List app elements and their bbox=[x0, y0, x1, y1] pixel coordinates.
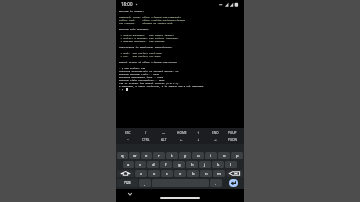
staticText: Working with packages: bbox=[119, 28, 150, 31]
button[interactable]: t bbox=[166, 152, 178, 159]
staticText: l bbox=[230, 162, 232, 168]
staticText: — bbox=[162, 131, 166, 135]
button[interactable]: a bbox=[123, 161, 134, 168]
button[interactable]: f bbox=[160, 161, 172, 168]
staticText: q bbox=[121, 153, 124, 159]
staticText: w bbox=[133, 153, 137, 159]
staticText: f bbox=[165, 162, 167, 168]
staticText: Building dependency tree... Done bbox=[119, 76, 164, 79]
staticText: vim is already the newest version (9.0.1… bbox=[119, 82, 180, 85]
staticText: e bbox=[145, 153, 148, 159]
button[interactable]: q bbox=[117, 152, 128, 159]
button[interactable]: s bbox=[135, 161, 146, 168]
button[interactable]: l bbox=[225, 161, 237, 168]
staticText: ~ $ bbox=[119, 88, 125, 91]
button[interactable]: ~ bbox=[119, 136, 137, 143]
staticText: * Search packages: pkg search <query> bbox=[119, 34, 175, 37]
button[interactable]: HOME bbox=[173, 129, 190, 136]
staticText: p bbox=[236, 153, 239, 159]
button[interactable]: k bbox=[212, 161, 224, 168]
staticText: Subscribing to additional repositories: bbox=[119, 46, 173, 49]
button[interactable]: w bbox=[129, 152, 140, 159]
button[interactable]: u bbox=[192, 152, 204, 159]
staticText: Gitter chat: https://gitter.im/termux/te… bbox=[119, 19, 186, 22]
button[interactable]: ↑ bbox=[190, 129, 207, 136]
button[interactable]: h bbox=[186, 161, 198, 168]
button[interactable]: b bbox=[187, 170, 199, 177]
button[interactable]: m bbox=[213, 170, 225, 177]
button[interactable]: j bbox=[199, 161, 211, 168]
button[interactable]: Backspace bbox=[226, 170, 243, 177]
staticText: x bbox=[153, 171, 156, 177]
staticText: m bbox=[217, 171, 221, 177]
button[interactable]: o bbox=[218, 152, 230, 159]
button[interactable]: p bbox=[231, 152, 243, 159]
staticText: 18:00 bbox=[121, 1, 133, 7]
staticText: / bbox=[145, 131, 147, 135]
button[interactable]: v bbox=[174, 170, 186, 177]
button[interactable]: ← bbox=[173, 136, 190, 143]
button[interactable]: PGDN bbox=[224, 136, 241, 143]
staticText: c bbox=[166, 171, 169, 177]
button[interactable]: END bbox=[207, 129, 224, 136]
staticText: PGDN bbox=[228, 138, 238, 142]
staticText: * Install a package: pkg install <packag… bbox=[119, 37, 179, 40]
staticText: * Root: pkg install root-repo bbox=[119, 52, 162, 55]
staticText: END bbox=[212, 131, 219, 135]
staticText: HOME bbox=[177, 131, 187, 135]
button[interactable]: ESC bbox=[119, 129, 137, 136]
button[interactable]: r bbox=[153, 152, 165, 159]
staticText: v bbox=[179, 171, 182, 177]
staticText: z bbox=[140, 171, 142, 177]
staticText: d bbox=[152, 162, 155, 168]
staticText: Community forum: https://termux.com/comm… bbox=[119, 16, 182, 19]
staticText: ?123 bbox=[124, 181, 131, 185]
button[interactable]: CTRL bbox=[137, 136, 155, 143]
button[interactable]: x bbox=[148, 170, 160, 177]
button[interactable]: Shift bbox=[117, 170, 134, 177]
button[interactable]: . bbox=[210, 179, 222, 187]
button[interactable]: Enter bbox=[223, 179, 243, 187]
staticText: . bbox=[215, 181, 217, 186]
staticText: ~ bbox=[127, 138, 129, 142]
button[interactable]: c bbox=[161, 170, 173, 177]
staticText: Reading package lists... Done bbox=[119, 73, 159, 76]
staticText: CTRL bbox=[142, 138, 150, 142]
button[interactable]: ALT bbox=[155, 136, 173, 143]
staticText: g bbox=[178, 162, 181, 168]
button[interactable]: PGUP bbox=[224, 129, 241, 136]
button[interactable]: z bbox=[135, 170, 147, 177]
staticText: r bbox=[158, 153, 160, 159]
staticText: * Upgrade packages: pkg upgrade bbox=[119, 40, 165, 43]
staticText: o bbox=[223, 153, 226, 159]
staticText: t bbox=[171, 153, 173, 159]
button[interactable]: g bbox=[173, 161, 185, 168]
button[interactable]: , bbox=[139, 179, 151, 187]
button[interactable]: e bbox=[141, 152, 152, 159]
button[interactable]: n bbox=[200, 170, 212, 177]
staticText: b bbox=[192, 171, 195, 177]
button[interactable]: y bbox=[179, 152, 191, 159]
button[interactable]: Hide keyboard bbox=[126, 190, 134, 198]
staticText: 0 upgraded, 0 newly installed, 0 to remo… bbox=[119, 85, 205, 88]
button[interactable]: ↓ bbox=[190, 136, 207, 143]
button[interactable]: / bbox=[137, 129, 155, 136]
button[interactable]: ?123 bbox=[117, 179, 138, 187]
button[interactable]: d bbox=[147, 161, 159, 168]
staticText: y bbox=[184, 153, 187, 159]
staticText: i bbox=[210, 153, 212, 159]
staticText: , bbox=[144, 181, 146, 186]
staticText: ALT bbox=[161, 138, 167, 142]
staticText: a bbox=[127, 162, 130, 168]
staticText: Welcome to Termux! bbox=[119, 10, 144, 13]
staticText: Checking availability of current mirror:… bbox=[119, 70, 179, 73]
staticText: ~ $ pkg install vim bbox=[119, 67, 146, 70]
staticText: ESC bbox=[125, 131, 131, 135]
button[interactable]: i bbox=[205, 152, 217, 159]
staticText: ← bbox=[180, 138, 183, 142]
button[interactable]: → bbox=[207, 136, 224, 143]
staticText: h bbox=[191, 162, 194, 168]
staticText: Reading state information... Done bbox=[119, 79, 165, 82]
button[interactable]: — bbox=[155, 129, 173, 136]
